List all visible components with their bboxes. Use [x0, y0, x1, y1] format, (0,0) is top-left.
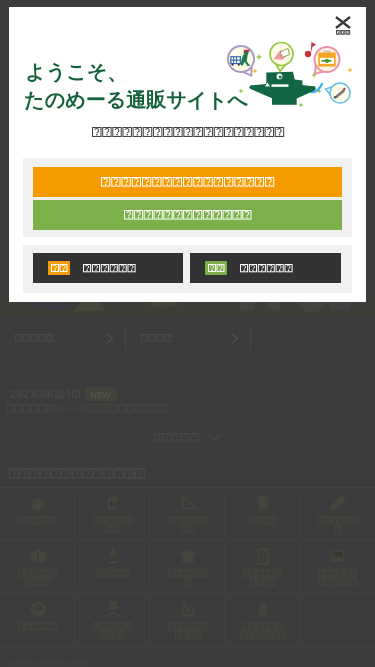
staticText: NEW	[90, 388, 112, 400]
staticText: たのめーる通販サイトへ	[24, 88, 248, 113]
button[interactable]: Close	[329, 10, 360, 41]
button[interactable]: 2023	[10, 386, 117, 401]
button[interactable]	[33, 200, 342, 230]
button[interactable]	[33, 253, 183, 283]
staticText: ようこそ、	[25, 60, 127, 85]
button[interactable]	[190, 253, 341, 283]
staticText: 21	[59, 386, 72, 401]
staticText: 2023	[10, 386, 36, 401]
button[interactable]	[33, 167, 342, 197]
staticText: 4	[44, 386, 51, 401]
